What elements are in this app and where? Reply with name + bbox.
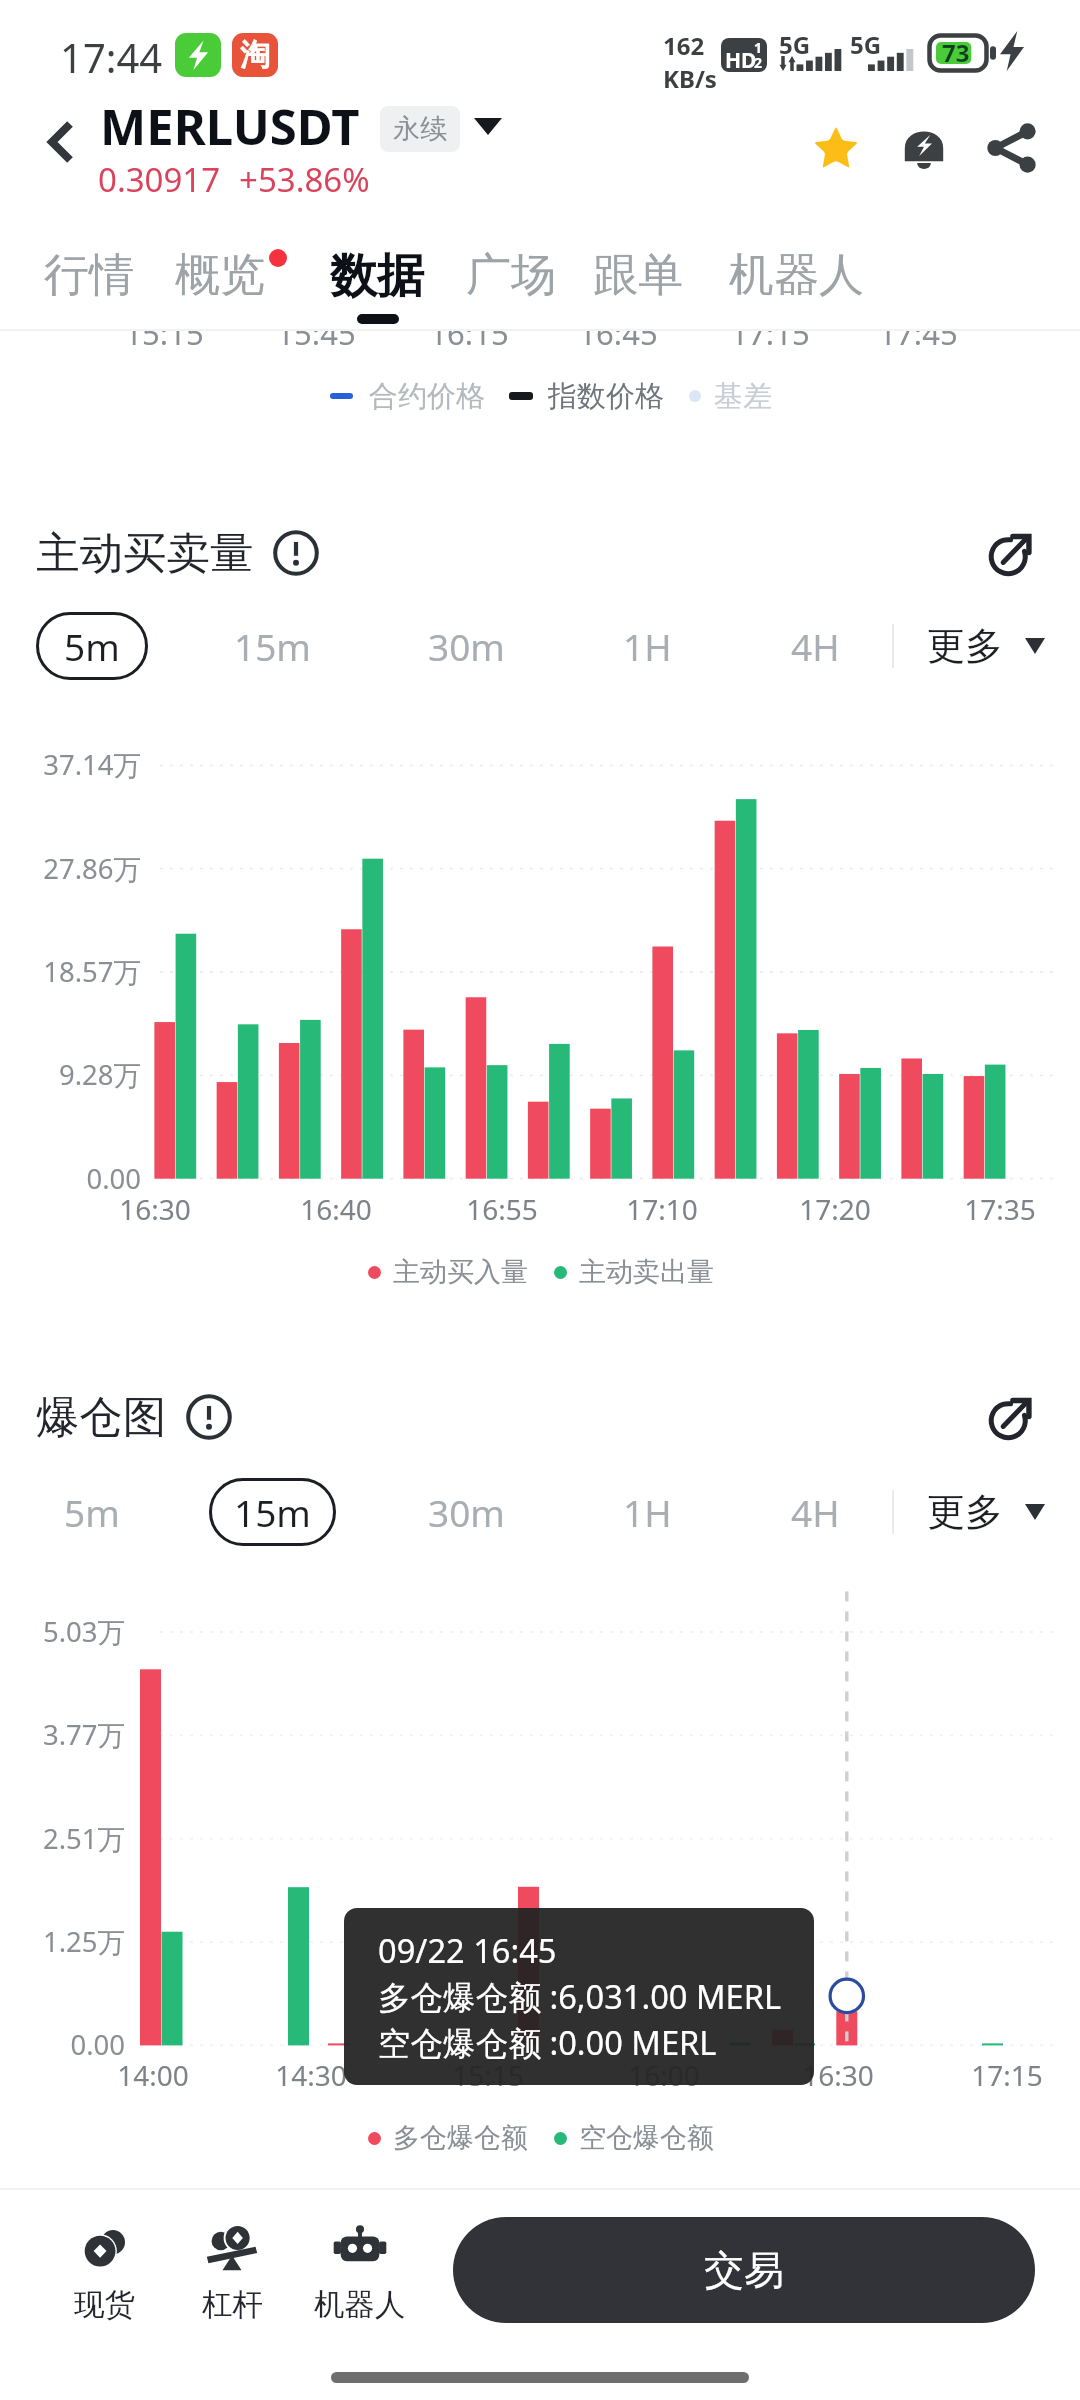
staticText: 主动买入量 (393, 1255, 528, 1289)
staticText: 27.86万 (0, 850, 141, 888)
button[interactable]: Open chart (976, 518, 1046, 588)
staticText: 30m (428, 621, 505, 671)
button[interactable]: 30m (403, 612, 530, 680)
staticText: 162 (663, 29, 705, 62)
button[interactable]: Price alert (878, 102, 970, 194)
staticText: 5.03万 (0, 1613, 125, 1651)
staticText: 1 (754, 38, 763, 57)
staticText: 跟单 (593, 247, 683, 304)
staticText: 1H (623, 1487, 672, 1537)
staticText: 16:00 (584, 2056, 744, 2094)
staticText: 更多 (927, 622, 1003, 670)
staticText: 永续 (393, 112, 447, 146)
staticText: 数据 (330, 247, 424, 306)
button[interactable]: 1H (595, 1478, 699, 1546)
button[interactable]: 更多 (927, 1484, 1045, 1540)
staticText: 广场 (466, 247, 556, 304)
staticText: +53.86% (239, 157, 370, 202)
button[interactable]: Back (22, 104, 98, 180)
staticText: HD (725, 46, 757, 72)
button[interactable]: 广场 (466, 247, 556, 304)
button[interactable]: 爆仓图 (36, 1387, 232, 1447)
staticText: 16:45 (558, 312, 678, 346)
button[interactable]: 杠杆 (168, 2222, 296, 2324)
staticText: 17:44 (60, 30, 163, 84)
staticText: 主动买卖量 (36, 526, 254, 581)
button[interactable]: 4H (763, 1478, 867, 1546)
staticText: 17:15 (710, 312, 830, 346)
staticText: 18.57万 (0, 953, 141, 991)
staticText: 0.00 (0, 1160, 141, 1197)
staticText: 概览 (175, 247, 265, 304)
staticText: 15:15 (408, 2056, 568, 2094)
staticText: 机器人 (729, 247, 864, 304)
staticText: 指数价格 (548, 378, 664, 414)
staticText: 0.30917 (98, 157, 221, 202)
button[interactable]: 机器人 (296, 2222, 424, 2324)
staticText: 合约价格 (369, 378, 485, 414)
staticText: 17:10 (582, 1190, 742, 1228)
staticText: 15:15 (104, 312, 224, 346)
staticText: 16:30 (75, 1190, 235, 1228)
staticText: 16:40 (256, 1190, 416, 1228)
staticText: 5m (64, 1487, 120, 1537)
staticText: 15:45 (256, 312, 376, 346)
button[interactable]: 行情 (44, 247, 134, 304)
staticText: 2 (754, 53, 763, 72)
staticText: KB/s (663, 62, 717, 95)
staticText: 15m (234, 621, 311, 671)
staticText: 4H (791, 1487, 840, 1537)
button[interactable]: 机器人 (729, 247, 864, 304)
button[interactable]: Share (966, 102, 1058, 194)
staticText: 更多 (927, 1488, 1003, 1536)
button[interactable]: 概览 (175, 247, 265, 304)
staticText: MERLUSDT (100, 93, 360, 160)
staticText: 9.28万 (0, 1056, 141, 1094)
button[interactable]: 1H (595, 612, 699, 680)
staticText: 空仓爆仓额 :0.00 MERL (378, 2020, 717, 2065)
staticText: 14:00 (73, 2056, 233, 2094)
staticText: 37.14万 (0, 746, 141, 784)
staticText: 16:30 (758, 2056, 918, 2094)
staticText: 机器人 (314, 2286, 406, 2324)
staticText: 09/22 16:45 (378, 1928, 557, 1972)
button[interactable]: 主动买卖量 (36, 523, 319, 583)
staticText: 交易 (704, 2245, 784, 2295)
staticText: 16:15 (409, 312, 529, 346)
staticText: 5G (850, 28, 882, 61)
staticText: 空仓爆仓额 (579, 2121, 714, 2155)
staticText: 17:20 (755, 1190, 915, 1228)
button[interactable]: 15m (209, 612, 336, 680)
staticText: 17:15 (927, 2056, 1080, 2094)
staticText: 淘 (240, 36, 270, 74)
button[interactable]: Open chart (976, 1382, 1046, 1452)
staticText: 基差 (714, 378, 772, 414)
button[interactable]: 5m (36, 1478, 148, 1546)
staticText: 5m (64, 621, 120, 671)
staticText: 主动卖出量 (579, 1255, 714, 1289)
staticText: 行情 (44, 247, 134, 304)
button[interactable]: 现货 (40, 2222, 168, 2324)
staticText: 3.77万 (0, 1716, 125, 1754)
staticText: 17:35 (920, 1190, 1080, 1228)
button[interactable]: 30m (403, 1478, 530, 1546)
staticText: 杠杆 (202, 2286, 263, 2324)
staticText: 2.51万 (0, 1820, 125, 1858)
button[interactable]: Favorite (790, 102, 882, 194)
staticText: 1H (623, 621, 672, 671)
staticText: 多仓爆仓额 :6,031.00 MERL (378, 1974, 782, 2019)
staticText: 16:55 (422, 1190, 582, 1228)
staticText: 1.25万 (0, 1923, 125, 1961)
button[interactable]: 数据 (330, 247, 424, 306)
button[interactable]: 4H (763, 612, 867, 680)
button[interactable]: 跟单 (593, 247, 683, 304)
staticText: 15m (234, 1487, 311, 1537)
button[interactable]: 5m (36, 612, 148, 680)
button[interactable]: 15m (209, 1478, 336, 1546)
staticText: 4H (791, 621, 840, 671)
button[interactable]: 更多 (927, 618, 1045, 674)
staticText: 现货 (74, 2286, 135, 2324)
staticText: 爆仓图 (36, 1390, 167, 1445)
staticText: 0.00 (0, 2026, 125, 2063)
button[interactable]: 交易 (453, 2217, 1035, 2323)
